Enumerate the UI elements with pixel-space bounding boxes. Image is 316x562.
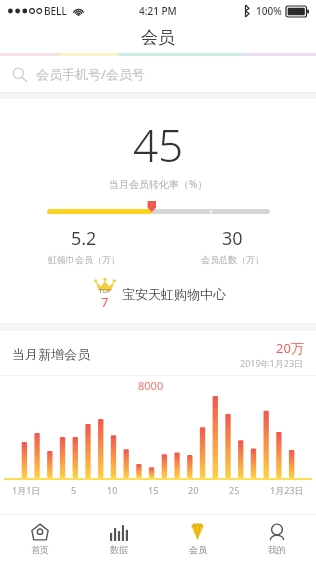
- staticText: 20: [188, 484, 199, 496]
- staticText: 30: [222, 226, 243, 251]
- staticText: 首页: [31, 544, 49, 555]
- staticText: 会员: [141, 27, 175, 48]
- staticText: 25: [229, 484, 240, 496]
- button[interactable]: 首页: [0, 515, 79, 562]
- button[interactable]: 会员手机号/会员号: [0, 56, 316, 92]
- button[interactable]: 30: [158, 226, 306, 265]
- staticText: 15: [148, 484, 159, 496]
- staticText: 宝安天虹购物中心: [122, 286, 226, 302]
- staticText: 5.2: [71, 226, 97, 251]
- button[interactable]: 会员: [158, 515, 237, 562]
- staticText: 会员: [189, 544, 207, 555]
- staticText: 8000: [138, 378, 164, 393]
- staticText: 100%: [256, 4, 282, 18]
- staticText: 当月会员转化率（%）: [109, 177, 208, 191]
- staticText: 4:21 PM: [139, 4, 177, 18]
- staticText: 7: [101, 293, 109, 311]
- staticText: 10: [107, 484, 118, 496]
- staticText: 5: [71, 484, 77, 496]
- staticText: 2019年1月23日: [240, 357, 304, 369]
- staticText: 数据: [110, 544, 128, 555]
- button[interactable]: TOP: [90, 277, 226, 311]
- staticText: 我的: [268, 544, 286, 555]
- button[interactable]: 我的: [237, 515, 316, 562]
- staticText: 会员手机号/会员号: [36, 65, 145, 83]
- staticText: 20万: [276, 339, 304, 357]
- button[interactable]: 数据: [79, 515, 158, 562]
- button[interactable]: 5.2: [10, 226, 158, 265]
- staticText: 1月23日: [270, 484, 304, 496]
- staticText: 当月新增会员: [12, 346, 90, 362]
- staticText: 会员总数（万）: [201, 254, 264, 265]
- staticText: BELL: [44, 4, 67, 18]
- staticText: 1月1日: [12, 484, 41, 496]
- staticText: 45: [133, 115, 184, 175]
- staticText: 虹领巾会员（万）: [48, 254, 120, 265]
- staticText: TOP: [99, 287, 111, 295]
